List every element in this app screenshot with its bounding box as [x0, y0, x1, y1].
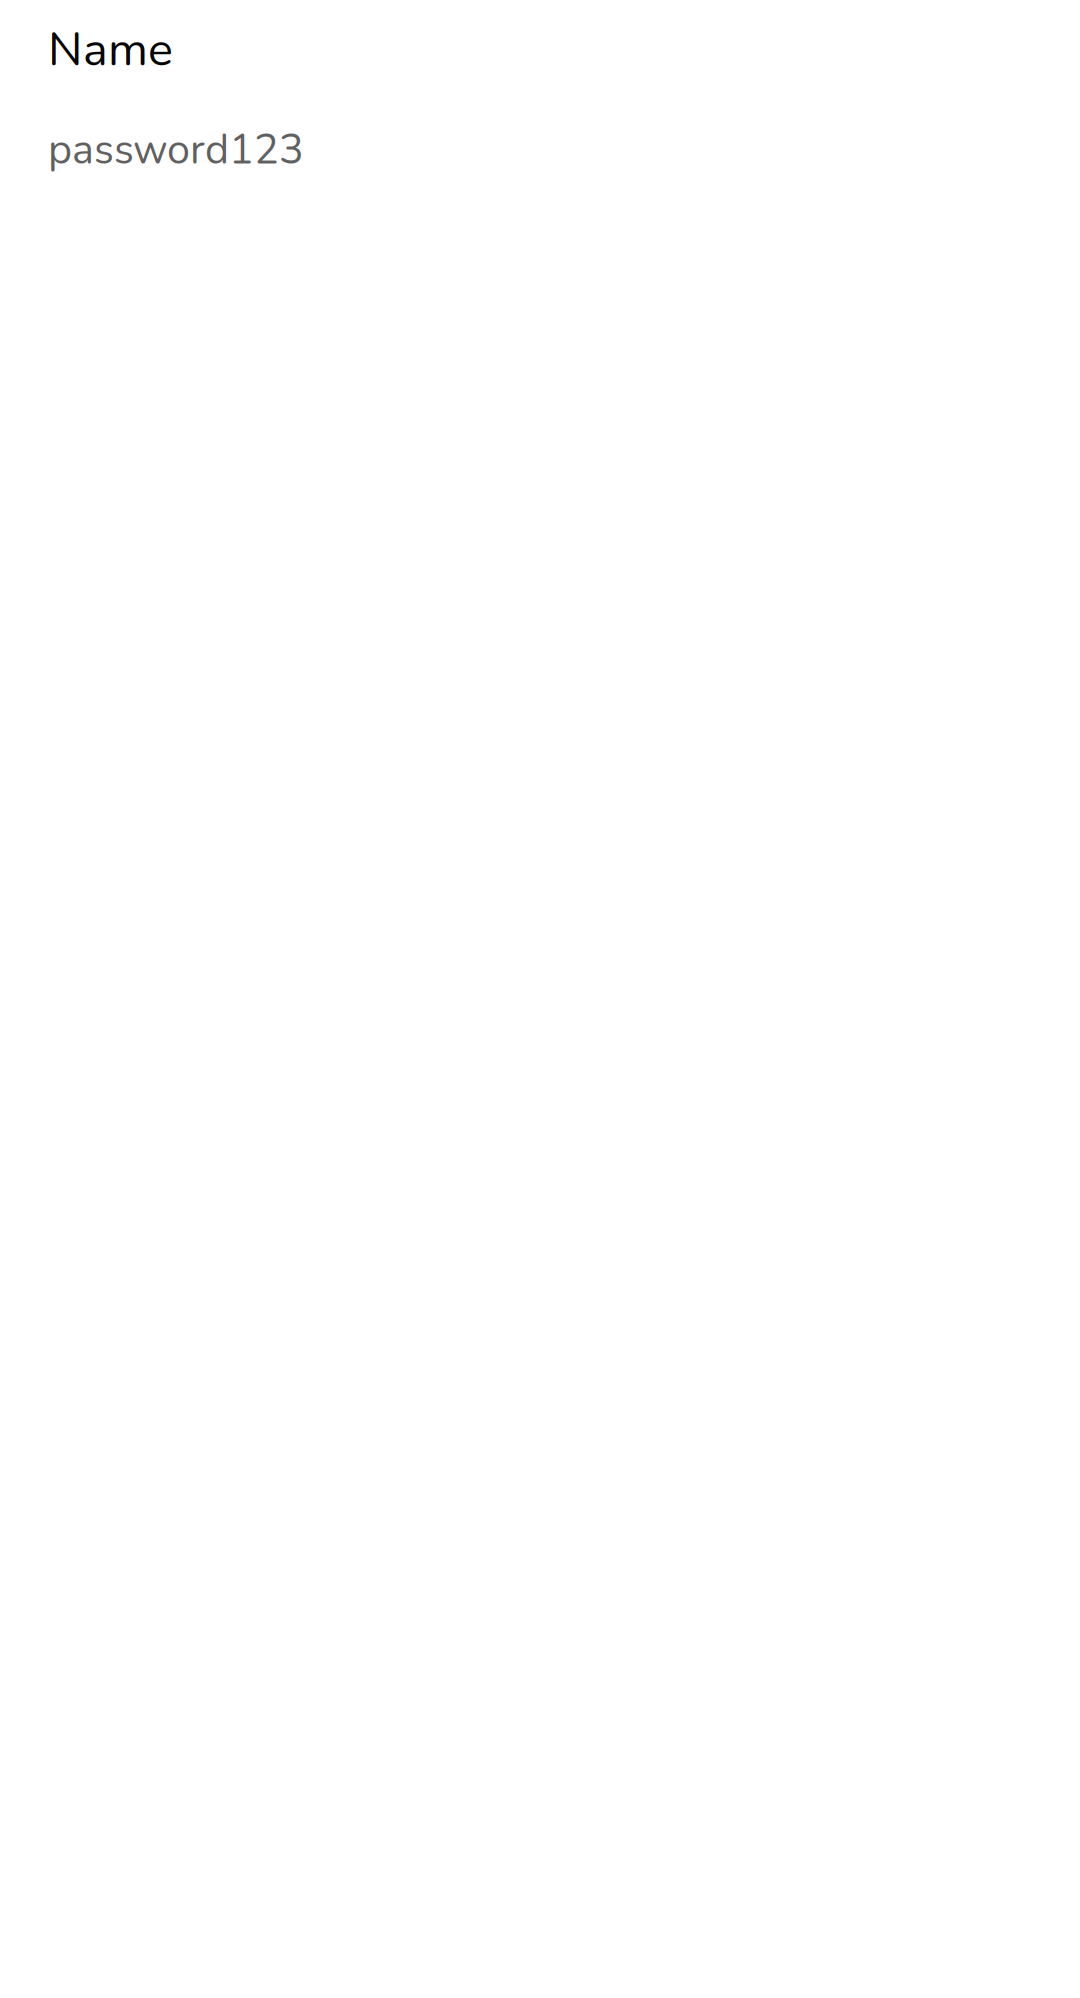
staticText: Name [48, 18, 173, 82]
staticText: password123 [48, 122, 304, 178]
